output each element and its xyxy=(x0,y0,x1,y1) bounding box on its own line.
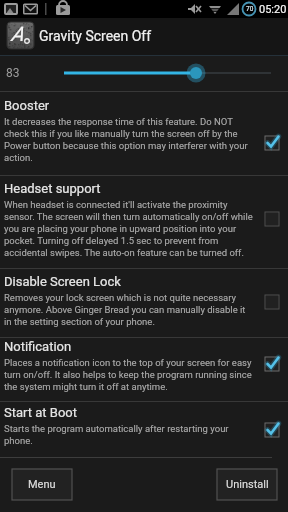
staticText: Gravity Screen Off xyxy=(39,28,152,44)
staticText: When headset is connected it'll activate… xyxy=(4,199,253,258)
staticText: 05:20 xyxy=(259,3,287,16)
staticText: Notification xyxy=(4,339,72,354)
staticText: Start at Boot xyxy=(4,405,77,420)
staticText: Places a notification icon to the top of… xyxy=(4,357,252,392)
staticText: Menu xyxy=(28,478,56,491)
staticText: 70 xyxy=(246,5,254,13)
staticText: Starts the program automatically after r… xyxy=(4,423,229,446)
staticText: Headset support xyxy=(4,181,101,196)
staticText: Disable Screen Lock xyxy=(4,274,121,289)
staticText: Removes your lock screen which is not qu… xyxy=(4,292,246,327)
staticText: It decreases the response time of this f… xyxy=(4,116,248,163)
staticText: A xyxy=(11,22,24,45)
staticText: 83 xyxy=(6,66,20,80)
staticText: Uninstall xyxy=(226,478,269,491)
staticText: Booster xyxy=(4,98,50,113)
